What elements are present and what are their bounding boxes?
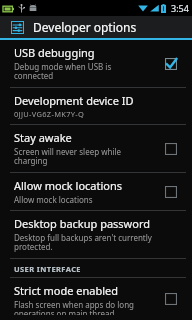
staticText: Allow mock locations — [14, 194, 93, 205]
button[interactable]: Toggle Allow mock locations — [160, 181, 182, 203]
button[interactable]: Developer options — [0, 16, 192, 38]
staticText: 3:54 — [171, 2, 189, 14]
staticText: USB debugging — [14, 45, 95, 60]
button[interactable]: Toggle Stay awake — [160, 138, 182, 160]
staticText: Flash screen when apps do long operation… — [14, 299, 135, 315]
button[interactable]: USB debugging — [0, 40, 192, 87]
staticText: Debug mode when USB is connected — [14, 61, 112, 82]
button[interactable]: Desktop backup password — [0, 211, 192, 258]
staticText: Desktop backup password — [14, 216, 151, 231]
staticText: Developer options — [33, 19, 137, 35]
staticText: Strict mode enabled — [14, 283, 119, 298]
staticText: Desktop full backups aren't currently pr… — [14, 232, 152, 253]
button[interactable]: Allow mock locations — [0, 173, 192, 210]
button[interactable]: Development device ID — [0, 88, 192, 124]
staticText: Development device ID — [14, 93, 134, 108]
staticText: Screen will never sleep while charging — [14, 146, 122, 167]
button[interactable]: Toggle Strict mode enabled — [160, 288, 182, 310]
staticText: USER INTERFACE — [14, 264, 81, 274]
button[interactable]: Toggle USB debugging — [160, 53, 182, 75]
staticText: Allow mock locations — [14, 178, 123, 193]
button[interactable]: Strict mode enabled — [0, 278, 192, 320]
staticText: Stay awake — [14, 130, 72, 145]
button[interactable]: Stay awake — [0, 125, 192, 172]
staticText: 0JJU-VG6Z-MK7Y-Q — [14, 109, 85, 119]
